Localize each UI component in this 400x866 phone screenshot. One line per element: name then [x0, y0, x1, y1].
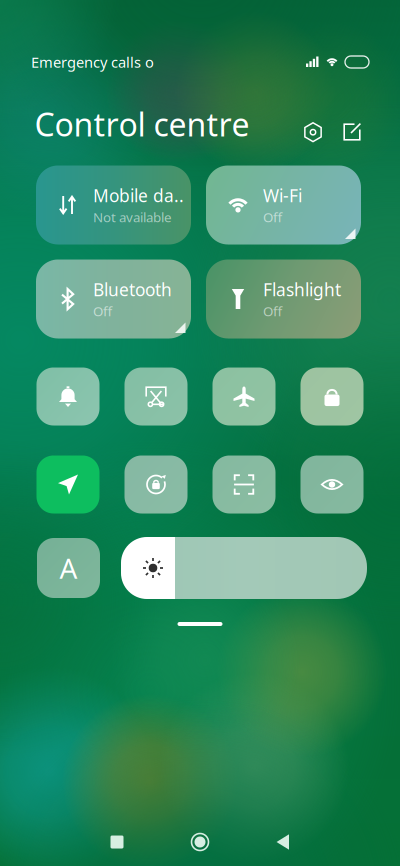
- button[interactable]: Recent apps: [110, 835, 123, 848]
- staticText: Emergency calls o: [31, 52, 154, 72]
- button[interactable]: Home: [190, 832, 210, 852]
- button[interactable]: Lock: [300, 367, 363, 425]
- button[interactable]: Mobile da..: [36, 165, 191, 244]
- staticText: Off: [263, 302, 282, 320]
- button[interactable]: Bluetooth: [36, 259, 191, 338]
- staticText: Wi-Fi: [263, 184, 302, 207]
- staticText: Mobile da..: [93, 184, 184, 207]
- button[interactable]: Silent: [36, 367, 99, 425]
- staticText: Off: [93, 302, 112, 320]
- staticText: Not available: [93, 208, 172, 226]
- button[interactable]: Auto-rotate: [124, 455, 187, 513]
- staticText: A: [59, 549, 77, 587]
- button[interactable]: Back: [276, 833, 290, 850]
- button[interactable]: Aeroplane mode: [212, 367, 275, 425]
- button[interactable]: Flashlight: [206, 259, 361, 338]
- staticText: Off: [263, 208, 282, 226]
- staticText: Bluetooth: [93, 278, 172, 301]
- staticText: Flashlight: [263, 278, 341, 301]
- button[interactable]: Settings: [303, 122, 322, 142]
- staticText: Control centre: [34, 103, 249, 145]
- button[interactable]: Screenshot: [124, 367, 187, 425]
- button[interactable]: Scanner: [212, 455, 275, 513]
- button[interactable]: Edit: [343, 123, 361, 141]
- button[interactable]: Location: [36, 455, 99, 513]
- button[interactable]: Brightness: [121, 537, 367, 599]
- button[interactable]: Auto brightness: [37, 538, 100, 598]
- button[interactable]: Reading mode: [300, 455, 363, 513]
- button[interactable]: Wi-Fi: [206, 165, 361, 244]
